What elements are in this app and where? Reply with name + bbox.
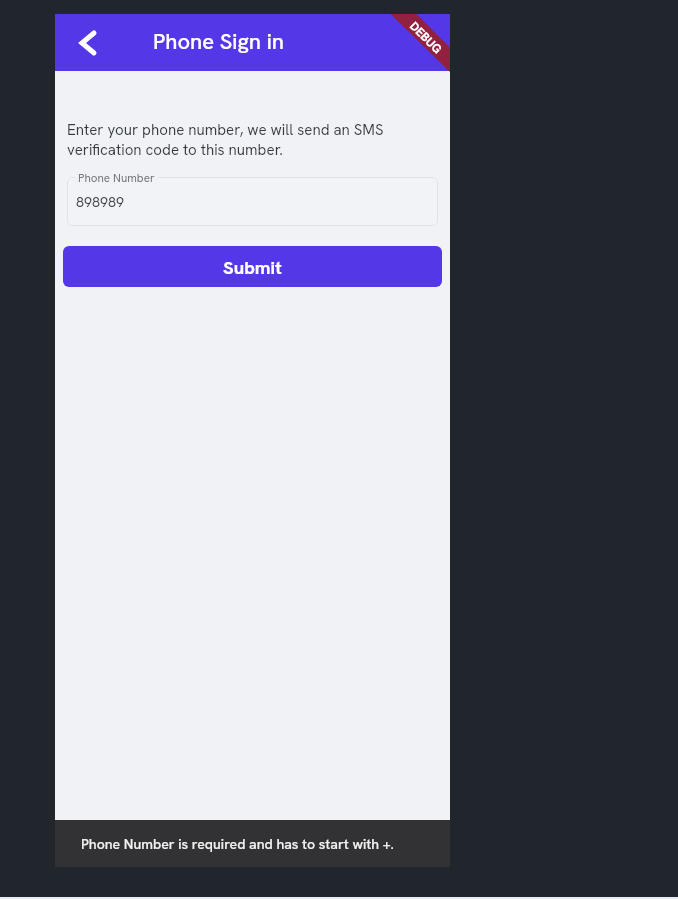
staticText: Submit — [223, 255, 282, 279]
staticText: Phone Sign in — [153, 27, 284, 56]
button[interactable]: 898989 — [67, 177, 438, 226]
button[interactable]: Back — [65, 20, 111, 66]
staticText: DEBUG — [406, 18, 446, 58]
staticText: Enter your phone number, we will send an… — [67, 120, 438, 160]
staticText: Phone Number is required and has to star… — [81, 835, 394, 853]
staticText: Phone Number — [78, 170, 155, 185]
staticText: 898989 — [76, 193, 125, 212]
button[interactable]: Submit — [63, 246, 442, 287]
